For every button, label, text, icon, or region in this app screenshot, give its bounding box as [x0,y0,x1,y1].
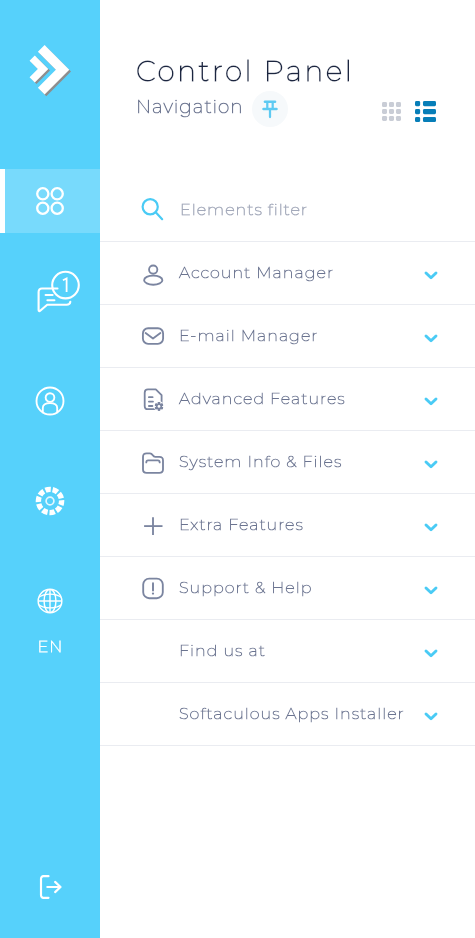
button[interactable]: Language [0,569,100,633]
button[interactable]: Home [22,36,82,96]
button[interactable]: Profile [0,369,100,433]
staticText: Softaculous Apps Installer [179,704,405,724]
button[interactable]: Find us at [100,620,475,682]
button[interactable]: Elements filter [100,178,475,241]
button[interactable]: Settings [0,469,100,533]
staticText: Navigation [136,95,244,118]
button[interactable]: Extra Features [100,494,475,556]
button[interactable]: Grid view [377,97,405,125]
staticText: Control Panel [136,54,355,88]
staticText: Elements filter [180,200,308,220]
staticText: Account Manager [179,263,335,283]
button[interactable]: Messages [0,259,100,323]
button[interactable]: EN [0,630,100,664]
button[interactable]: Log out [0,855,100,919]
button[interactable]: Account Manager [100,242,475,304]
staticText: EN [37,637,64,657]
button[interactable]: Support & Help [100,557,475,619]
button[interactable]: Dashboard [0,169,100,233]
button[interactable]: List view [411,97,439,125]
button[interactable]: E-mail Manager [100,305,475,367]
staticText: Extra Features [179,515,304,535]
staticText: E-mail Manager [179,326,319,346]
staticText: Advanced Features [179,389,346,409]
button[interactable]: System Info & Files [100,431,475,493]
button[interactable]: Softaculous Apps Installer [100,683,475,745]
button[interactable]: Pin navigation [252,91,288,127]
button[interactable]: Advanced Features [100,368,475,430]
staticText: Find us at [179,641,266,661]
staticText: Support & Help [179,578,313,598]
staticText: System Info & Files [179,452,343,472]
